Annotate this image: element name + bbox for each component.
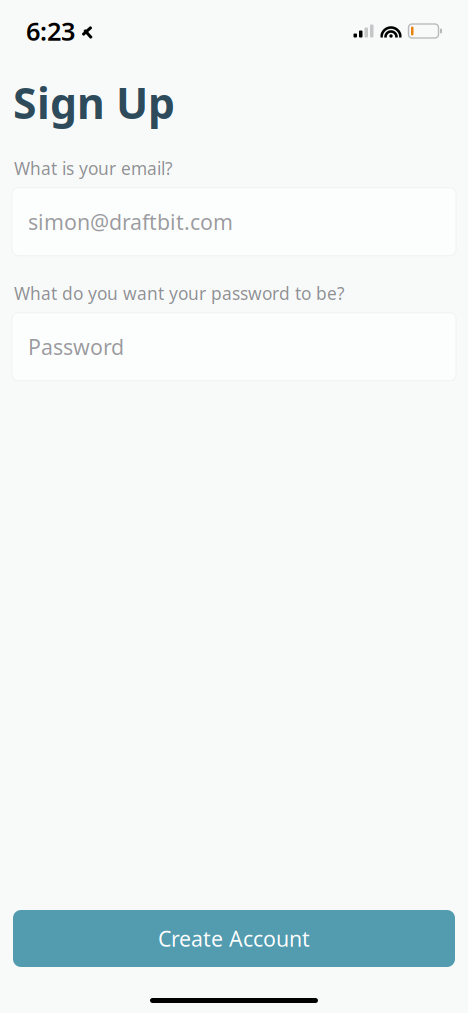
staticText: simon@draftbit.com — [28, 207, 233, 236]
button[interactable]: simon@draftbit.com — [12, 188, 456, 256]
button[interactable]: Create Account — [13, 910, 455, 967]
staticText: Create Account — [158, 924, 310, 953]
staticText: 6:23 — [26, 14, 75, 48]
staticText: Password — [28, 332, 124, 361]
staticText: What is your email? — [14, 157, 173, 180]
button[interactable]: Password — [12, 313, 456, 381]
staticText: What do you want your password to be? — [14, 282, 345, 305]
staticText: Sign Up — [13, 74, 175, 131]
